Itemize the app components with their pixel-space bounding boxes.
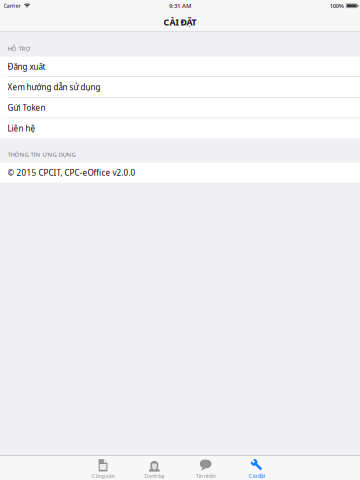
staticText: THÔNG TIN ỨNG DỤNG bbox=[7, 150, 75, 158]
staticText: Xem hướng dẫn sử dụng bbox=[7, 82, 100, 93]
staticText: Liên hệ bbox=[7, 123, 35, 134]
staticText: Tin nhắn bbox=[196, 472, 216, 479]
button[interactable]: Cài đặt bbox=[231, 455, 283, 480]
button[interactable]: Đăng xuất bbox=[0, 56, 360, 77]
staticText: © 2015 CPCIT, CPC-eOffice v2.0.0 bbox=[7, 167, 135, 178]
staticText: Cài đặt bbox=[248, 472, 265, 479]
button[interactable]: Công văn bbox=[77, 455, 129, 480]
button[interactable]: Tin nhắn bbox=[180, 455, 231, 480]
staticText: 100% bbox=[330, 2, 344, 10]
staticText: 9:31 AM bbox=[169, 2, 191, 10]
button[interactable]: Xem hướng dẫn sử dụng bbox=[0, 77, 360, 97]
staticText: Công văn bbox=[91, 472, 114, 479]
staticText: Carrier bbox=[3, 2, 20, 9]
button[interactable]: Gửi Token bbox=[0, 98, 360, 118]
staticText: HỖ TRỢ bbox=[7, 44, 30, 52]
staticText: Đăng xuất bbox=[7, 61, 45, 72]
button[interactable]: Liên hệ bbox=[0, 118, 360, 138]
button[interactable]: Danh bạ bbox=[129, 455, 180, 480]
staticText: CÀI ĐẶT bbox=[163, 16, 196, 28]
button[interactable]: © 2015 CPCIT, CPC-eOffice v2.0.0 bbox=[0, 162, 360, 183]
staticText: Danh bạ bbox=[144, 472, 164, 479]
staticText: Gửi Token bbox=[7, 102, 45, 113]
